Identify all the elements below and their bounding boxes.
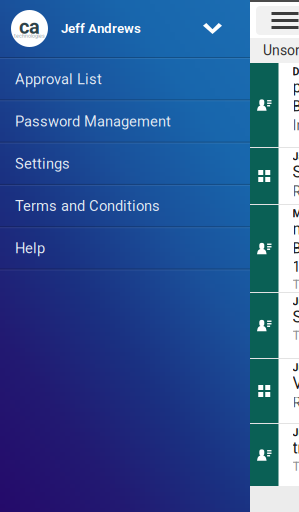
staticText: Jul 1, 2017: [292, 295, 299, 308]
staticText: Settings: [15, 155, 70, 172]
button[interactable]: Jul 8, 2017: [250, 359, 299, 423]
button[interactable]: Password Management: [0, 101, 250, 142]
staticText: Budget request: [292, 98, 299, 115]
staticText: Jeff Andrews: [61, 21, 141, 36]
staticText: Travel: [292, 277, 299, 292]
button[interactable]: Jul 1, 2017: [250, 293, 299, 358]
staticText: May 9, 2017: [292, 207, 299, 220]
staticText: Sales order: [292, 163, 299, 181]
staticText: Terms and Conditions: [15, 197, 160, 215]
staticText: Approval List: [15, 71, 102, 88]
button[interactable]: Collapse account: [203, 23, 250, 34]
staticText: Ticket: [292, 328, 299, 343]
button[interactable]: Help: [0, 228, 250, 268]
staticText: travel plan: [292, 439, 299, 457]
staticText: more time: [292, 220, 299, 238]
staticText: ca: [19, 15, 40, 39]
staticText: Review: [292, 183, 299, 200]
staticText: Vendor: [292, 374, 299, 392]
staticText: Unsorted: [263, 42, 299, 59]
button[interactable]: Dec 22, 2016: [250, 63, 299, 147]
staticText: 10 days: [292, 259, 299, 275]
button[interactable]: Terms and Conditions: [0, 186, 250, 226]
staticText: Service call: [292, 308, 299, 326]
button[interactable]: Approval List: [0, 59, 250, 99]
staticText: Invoice approval: [292, 117, 299, 134]
staticText: please approve: [292, 78, 299, 96]
staticText: Request: [292, 394, 299, 411]
button[interactable]: Settings: [0, 144, 250, 184]
staticText: Jan 4, 2017: [292, 150, 299, 163]
staticText: technologies: [14, 33, 45, 39]
staticText: Jul 9, 2017: [292, 426, 299, 439]
button[interactable]: Jul 9, 2017: [250, 424, 299, 486]
staticText: Password Management: [15, 113, 171, 130]
staticText: Jul 8, 2017: [292, 361, 299, 374]
staticText: Help: [15, 240, 45, 257]
staticText: Booking: [292, 240, 299, 257]
button[interactable]: Menu: [256, 6, 299, 35]
button[interactable]: Jan 4, 2017: [250, 148, 299, 204]
staticText: Ticket: [292, 459, 299, 474]
staticText: Dec 22, 2016: [292, 65, 299, 78]
button[interactable]: May 9, 2017: [250, 205, 299, 292]
